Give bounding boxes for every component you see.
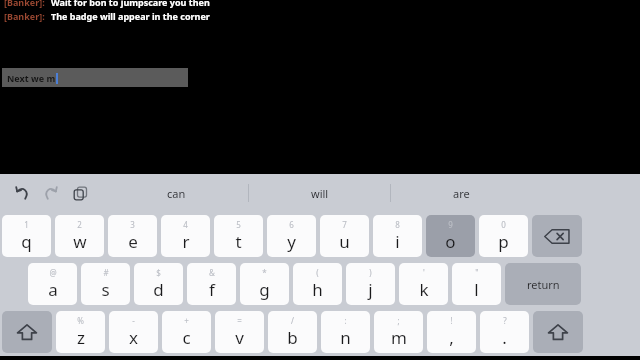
button[interactable]: Backspace xyxy=(532,215,582,257)
staticText: [Banker]: xyxy=(4,0,45,8)
staticText: i xyxy=(395,230,400,253)
staticText: c xyxy=(182,326,191,349)
button[interactable]: ; xyxy=(374,311,423,353)
staticText: Wait for bon to jumpscare you then xyxy=(51,0,210,8)
staticText: * xyxy=(262,267,267,278)
staticText: Next we m xyxy=(7,72,56,84)
button[interactable]: 6 xyxy=(267,215,316,257)
staticText: = xyxy=(237,315,242,326)
staticText: a xyxy=(48,278,58,301)
button[interactable]: are xyxy=(391,174,532,212)
staticText: . xyxy=(502,326,507,349)
button[interactable]: Next we m xyxy=(2,68,188,87)
staticText: d xyxy=(153,278,164,301)
staticText: % xyxy=(77,315,84,326)
button[interactable]: : xyxy=(321,311,370,353)
staticText: j xyxy=(368,278,373,301)
staticText: " xyxy=(475,267,479,278)
staticText: 4 xyxy=(183,219,188,230)
staticText: ) xyxy=(369,267,372,278)
button[interactable]: 5 xyxy=(214,215,263,257)
staticText: / xyxy=(291,315,294,326)
button[interactable]: 0 xyxy=(479,215,528,257)
staticText: 6 xyxy=(289,219,294,230)
staticText: g xyxy=(259,278,270,301)
button[interactable]: % xyxy=(56,311,105,353)
button[interactable]: ) xyxy=(346,263,395,305)
button[interactable]: will xyxy=(249,174,390,212)
button[interactable]: & xyxy=(187,263,236,305)
button[interactable]: 9 xyxy=(426,215,475,257)
staticText: 3 xyxy=(130,219,135,230)
button[interactable]: Redo xyxy=(38,180,64,206)
staticText: + xyxy=(184,315,189,326)
staticText: ' xyxy=(423,267,425,278)
staticText: w xyxy=(73,230,87,253)
button[interactable]: Shift xyxy=(533,311,583,353)
staticText: e xyxy=(128,230,138,253)
staticText: t xyxy=(235,230,242,253)
staticText: 0 xyxy=(501,219,506,230)
staticText: : xyxy=(344,315,347,326)
staticText: [Banker]: xyxy=(4,10,45,22)
staticText: l xyxy=(474,278,479,301)
staticText: 9 xyxy=(448,219,453,230)
staticText: q xyxy=(21,230,32,253)
staticText: b xyxy=(287,326,298,349)
staticText: u xyxy=(339,230,350,253)
staticText: ! xyxy=(450,315,453,326)
button[interactable]: 1 xyxy=(2,215,51,257)
staticText: ( xyxy=(316,267,319,278)
button[interactable]: 2 xyxy=(55,215,104,257)
staticText: 5 xyxy=(236,219,241,230)
staticText: z xyxy=(77,326,85,349)
staticText: v xyxy=(235,326,244,349)
button[interactable]: return xyxy=(505,263,581,305)
button[interactable]: = xyxy=(215,311,264,353)
staticText: p xyxy=(498,230,509,253)
staticText: ? xyxy=(503,315,507,326)
button[interactable]: / xyxy=(268,311,317,353)
staticText: - xyxy=(132,315,135,326)
button[interactable]: Paste xyxy=(67,180,93,206)
button[interactable]: can xyxy=(104,174,248,212)
staticText: @ xyxy=(49,267,57,278)
button[interactable]: 8 xyxy=(373,215,422,257)
staticText: , xyxy=(449,326,454,349)
staticText: & xyxy=(209,267,215,278)
staticText: can xyxy=(167,186,186,201)
staticText: 8 xyxy=(395,219,400,230)
button[interactable]: 4 xyxy=(161,215,210,257)
staticText: 7 xyxy=(342,219,347,230)
button[interactable]: ! xyxy=(427,311,476,353)
staticText: 2 xyxy=(77,219,82,230)
button[interactable]: * xyxy=(240,263,289,305)
button[interactable]: @ xyxy=(28,263,77,305)
staticText: o xyxy=(445,230,456,253)
button[interactable]: Undo xyxy=(9,180,35,206)
staticText: 1 xyxy=(24,219,29,230)
staticText: are xyxy=(453,186,470,201)
button[interactable]: 7 xyxy=(320,215,369,257)
staticText: f xyxy=(209,278,215,301)
staticText: s xyxy=(101,278,110,301)
staticText: y xyxy=(287,230,296,253)
button[interactable]: # xyxy=(81,263,130,305)
button[interactable]: 3 xyxy=(108,215,157,257)
button[interactable]: $ xyxy=(134,263,183,305)
button[interactable]: ? xyxy=(480,311,529,353)
button[interactable]: - xyxy=(109,311,158,353)
staticText: $ xyxy=(156,267,161,278)
button[interactable]: " xyxy=(452,263,501,305)
staticText: n xyxy=(340,326,351,349)
staticText: return xyxy=(527,277,560,292)
staticText: # xyxy=(103,267,109,278)
button[interactable]: ( xyxy=(293,263,342,305)
staticText: ; xyxy=(397,315,400,326)
button[interactable]: ' xyxy=(399,263,448,305)
button[interactable]: + xyxy=(162,311,211,353)
button[interactable]: Shift xyxy=(2,311,52,353)
staticText: h xyxy=(312,278,323,301)
staticText: k xyxy=(419,278,429,301)
staticText: x xyxy=(129,326,138,349)
